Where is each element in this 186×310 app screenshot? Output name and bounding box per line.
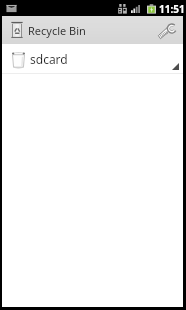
staticText: sdcard [30, 51, 68, 67]
button[interactable]: sdcard [2, 44, 183, 73]
staticText: Recycle Bin [28, 23, 86, 38]
staticText: 11:51 [159, 2, 185, 16]
button[interactable]: Settings [153, 17, 179, 43]
